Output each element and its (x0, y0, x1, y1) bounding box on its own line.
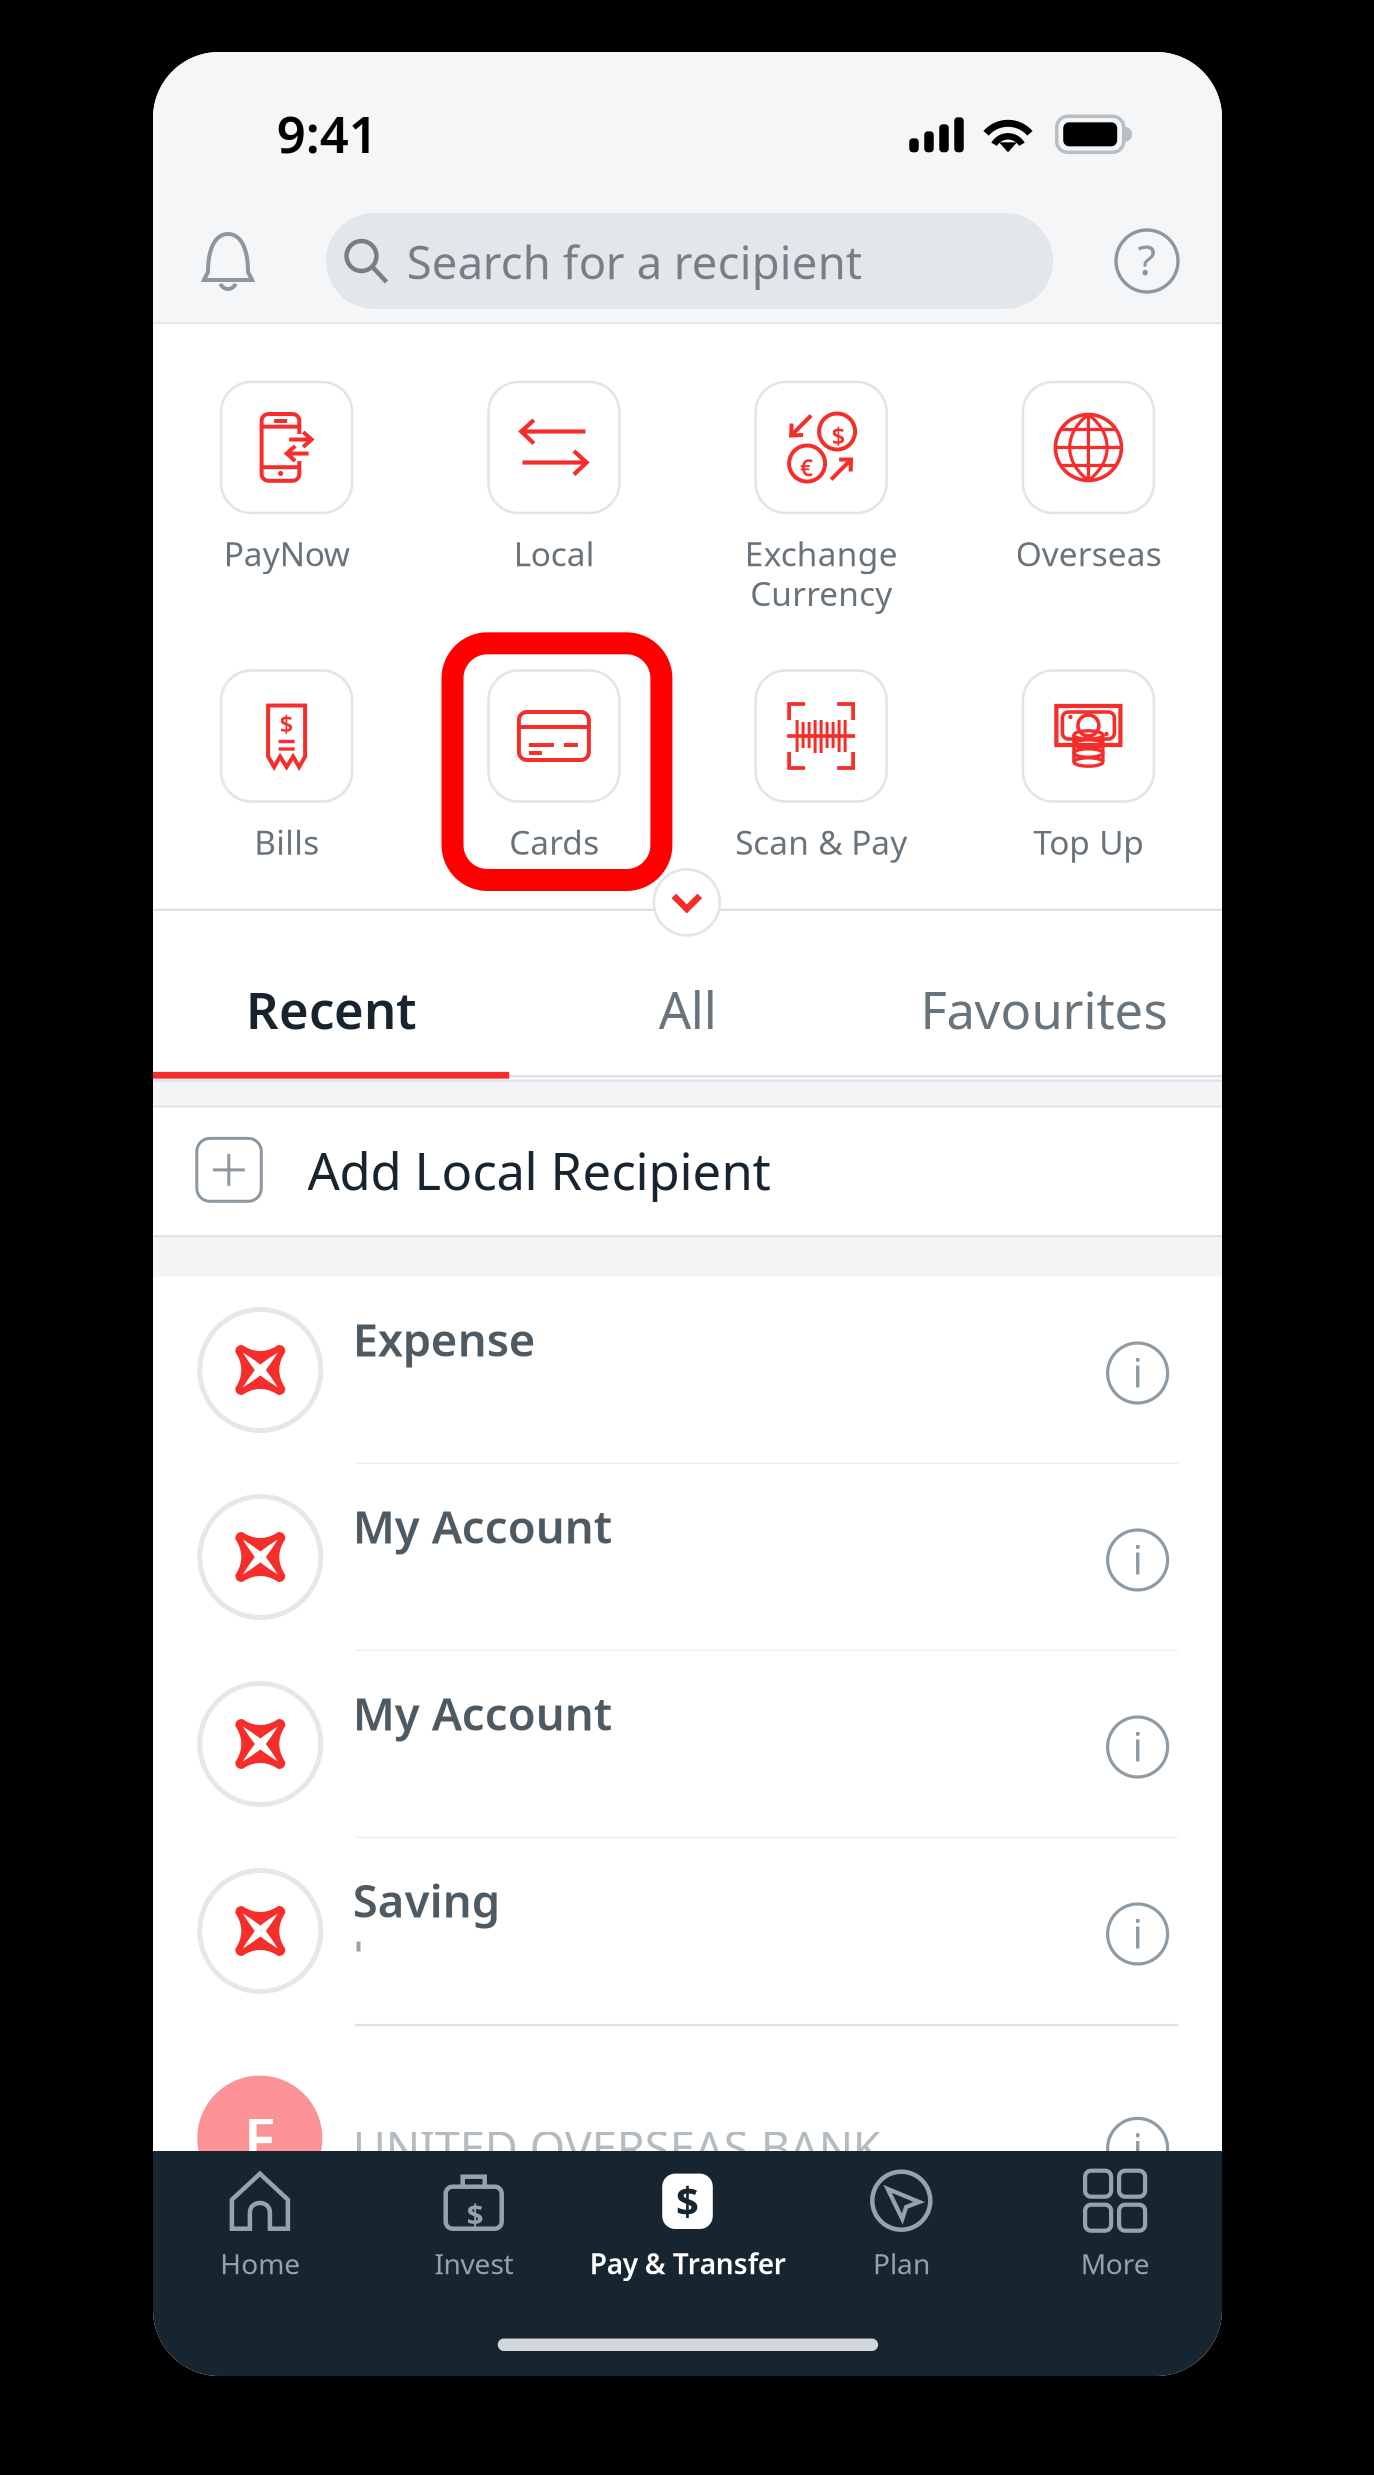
staticText: ? (1137, 231, 1156, 287)
button[interactable]: Overseas (153, 52, 420, 292)
button[interactable]: Notifications (153, 52, 239, 148)
staticText: Saving (353, 1870, 500, 1930)
staticText: i (1133, 1719, 1143, 1772)
staticText: Search for a recipient (407, 232, 862, 292)
staticText: Recent (246, 976, 417, 1043)
staticText: UNITED OVERSEAS BANK (353, 2117, 881, 2177)
button[interactable]: Help (153, 52, 249, 148)
button[interactable]: Saving (153, 52, 1222, 239)
staticText: My Account (353, 1496, 612, 1556)
staticText: Add Local Recipient (307, 1137, 770, 1204)
button[interactable]: My Account (153, 52, 1222, 239)
staticText: More (1081, 2245, 1150, 2282)
button[interactable]: Recent (153, 52, 509, 212)
staticText: Expense (353, 1309, 536, 1369)
staticText: Cards (509, 820, 599, 864)
staticText: Scan & Pay (735, 820, 907, 864)
staticText: Invest (434, 2245, 513, 2282)
staticText: Plan (873, 2245, 930, 2282)
staticText: € (800, 452, 813, 483)
button[interactable]: Home (153, 2151, 367, 2301)
staticText: Bills (254, 820, 319, 864)
button[interactable]: $ (153, 2151, 367, 2301)
staticText: PayNow (224, 531, 350, 575)
button[interactable]: All (153, 52, 509, 212)
button[interactable]: Search for a recipient (153, 52, 880, 148)
button[interactable]: $ (153, 52, 420, 292)
staticText: All (658, 976, 716, 1043)
button[interactable]: Plan (153, 2151, 367, 2301)
staticText: Top Up (1033, 820, 1144, 864)
staticText: $ (832, 419, 846, 451)
staticText: 9:41 (277, 100, 378, 167)
button[interactable]: Favourites (153, 52, 509, 212)
staticText: Home (220, 2245, 300, 2282)
staticText: i (1133, 1906, 1143, 1959)
staticText: $ (280, 707, 294, 739)
button[interactable]: F (153, 52, 1222, 242)
staticText: Local (513, 531, 594, 575)
button[interactable]: My Account (153, 52, 1222, 239)
staticText: F (244, 2099, 276, 2177)
button[interactable]: Show more (153, 52, 219, 118)
button[interactable]: $ (153, 2151, 367, 2301)
staticText: i (1133, 1532, 1143, 1585)
staticText: i (1133, 1345, 1143, 1398)
button[interactable]: Add Local Recipient (153, 52, 1222, 178)
staticText: Favourites (920, 976, 1167, 1043)
staticText: Overseas (1015, 531, 1161, 575)
staticText: $ (467, 2195, 484, 2234)
button[interactable]: Expense (153, 52, 1222, 239)
staticText: Pay & Transfer (589, 2245, 785, 2282)
button[interactable]: More (153, 2151, 367, 2301)
button[interactable]: Top Up (153, 52, 420, 252)
button[interactable]: $ (153, 52, 420, 252)
staticText: Currency (750, 571, 892, 615)
staticText: i (1133, 2121, 1143, 2174)
staticText: My Account (353, 1683, 612, 1743)
staticText: Exchange (745, 531, 898, 575)
button[interactable]: Local (153, 52, 420, 292)
staticText: $ (676, 2174, 699, 2227)
button[interactable]: Cards (153, 52, 420, 252)
button[interactable]: Scan & Pay (153, 52, 420, 252)
button[interactable]: PayNow (153, 52, 420, 292)
